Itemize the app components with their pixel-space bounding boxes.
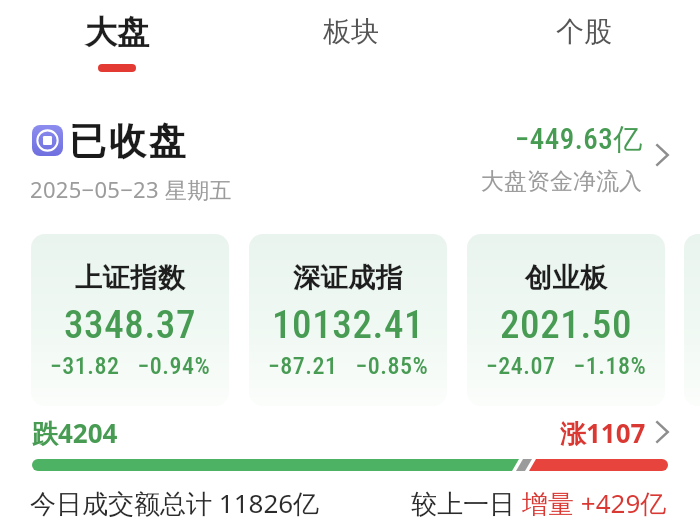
staticText: 跌4204 <box>32 415 118 451</box>
button[interactable]: 创业板 <box>467 234 665 406</box>
button[interactable]: 板块 <box>234 0 467 88</box>
staticText: 2021.50 <box>500 302 633 348</box>
staticText: −87.21 −0.85% <box>268 352 429 380</box>
staticText: 板块 <box>323 14 379 49</box>
staticText: 2025−05−23 星期五 <box>30 174 232 204</box>
button[interactable]: 深证成指 <box>249 234 447 406</box>
staticText: −449.63亿 <box>515 121 643 158</box>
staticText: 今日成交额总计 11826亿 <box>30 485 320 521</box>
staticText: 3348.37 <box>64 302 197 348</box>
staticText: 10132.41 <box>272 302 425 348</box>
staticText: −31.82 −0.94% <box>50 352 211 380</box>
staticText: −24.07 −1.18% <box>486 352 647 380</box>
staticText: 个股 <box>556 14 612 49</box>
button[interactable]: 科创50 <box>684 234 700 406</box>
staticText: 大盘资金净流入 <box>481 167 642 196</box>
staticText: 深证成指 <box>293 261 404 295</box>
button[interactable]: 涨跌家数详情 <box>642 412 682 452</box>
button[interactable]: 个股 <box>467 0 700 88</box>
button[interactable]: 上证指数 <box>31 234 229 406</box>
staticText: 创业板 <box>525 261 608 295</box>
staticText: 大盘 <box>85 12 149 52</box>
staticText: 较上一日 <box>411 485 522 521</box>
staticText: 上证指数 <box>75 261 186 295</box>
button[interactable]: 大盘 <box>0 0 234 88</box>
staticText: 增量 +429亿 <box>522 485 667 521</box>
staticText: 涨1107 <box>560 415 646 451</box>
button[interactable]: 资金流向详情 <box>642 135 682 175</box>
staticText: 已收盘 <box>69 118 189 165</box>
